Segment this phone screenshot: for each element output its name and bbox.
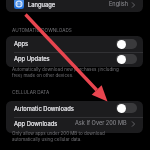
staticText: Automatically download new purchases (in… — [12, 67, 125, 78]
staticText: CELLULAR DATA — [12, 89, 50, 95]
button[interactable]: Toggle off — [116, 103, 137, 113]
button[interactable] — [6, 36, 143, 52]
staticText: Only allow apps under 200 MB to download… — [12, 131, 108, 142]
button[interactable] — [6, 117, 143, 133]
button[interactable]: Toggle off — [116, 39, 137, 49]
staticText: Automatic Downloads — [14, 105, 74, 112]
staticText: English — [109, 1, 129, 8]
staticText: Apps — [14, 40, 29, 47]
staticText: App Downloads — [14, 120, 58, 127]
staticText: AUTOMATIC DOWNLOADS — [12, 27, 72, 33]
staticText: Ask If Over 200 MB — [75, 120, 127, 127]
button[interactable] — [6, 0, 143, 12]
staticText: Language — [28, 1, 56, 8]
staticText: App Updates — [14, 55, 50, 62]
button[interactable] — [6, 52, 143, 68]
button[interactable]: Toggle off — [116, 54, 137, 64]
button[interactable] — [6, 101, 143, 117]
